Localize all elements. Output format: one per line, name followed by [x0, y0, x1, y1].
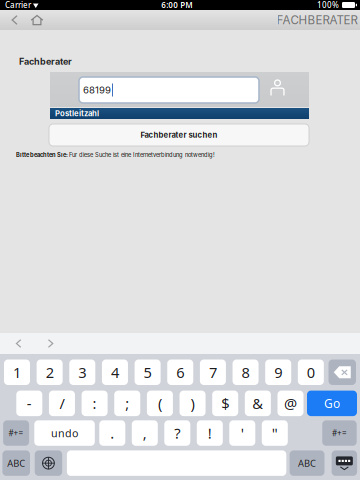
staticText: Carrier	[5, 0, 31, 10]
staticText: 6	[176, 362, 184, 382]
staticText: 5	[144, 362, 152, 382]
staticText: 4	[111, 362, 119, 382]
button[interactable]: Back	[5, 11, 25, 29]
staticText: )	[191, 394, 195, 413]
staticText: 2	[46, 362, 54, 382]
button[interactable]: /	[49, 391, 75, 416]
staticText: @	[284, 394, 297, 413]
button[interactable]: 7	[200, 359, 226, 385]
staticText: ABC	[7, 457, 25, 469]
staticText: 9	[274, 362, 282, 382]
button[interactable]: Previous	[12, 335, 26, 351]
staticText: 0	[307, 362, 315, 382]
button[interactable]	[67, 450, 286, 476]
button[interactable]: ;	[114, 391, 140, 416]
button[interactable]: ABC	[290, 450, 324, 476]
staticText: &	[252, 394, 263, 413]
staticText: ,	[143, 423, 147, 443]
button[interactable]: Go	[307, 391, 357, 416]
button[interactable]: Next	[44, 335, 58, 351]
staticText: .	[110, 423, 114, 443]
staticText: Fachberater suchen	[140, 130, 217, 140]
button[interactable]: @	[277, 391, 303, 416]
button[interactable]: 0	[298, 359, 324, 385]
button[interactable]: $	[212, 391, 238, 416]
button[interactable]: #+=	[3, 420, 29, 446]
staticText: 6:00 PM	[161, 0, 192, 10]
button[interactable]: ,	[132, 420, 158, 446]
staticText: 100%	[317, 0, 339, 10]
button[interactable]: 9	[265, 359, 291, 385]
button[interactable]: Fachberater suchen	[49, 124, 309, 146]
staticText: "	[272, 423, 278, 443]
staticText: ?	[174, 423, 180, 443]
button[interactable]: 8	[232, 359, 258, 385]
staticText: ;	[125, 394, 129, 413]
staticText: Postleitzahl	[55, 109, 99, 118]
staticText: ABC	[298, 457, 316, 469]
staticText: #+=	[332, 428, 347, 438]
button[interactable]: "	[262, 420, 288, 446]
staticText: 68199	[83, 84, 111, 96]
staticText: undo	[51, 426, 78, 440]
button[interactable]: 2	[37, 359, 63, 385]
button[interactable]: ?	[164, 420, 190, 446]
button[interactable]: 6	[167, 359, 193, 385]
button[interactable]: Delete	[328, 359, 356, 385]
staticText: 8	[241, 362, 249, 382]
button[interactable]: (	[147, 391, 173, 416]
staticText: Fachberater	[19, 56, 72, 67]
button[interactable]: Next keyboard	[35, 450, 62, 476]
button[interactable]: undo	[34, 420, 95, 446]
staticText: !	[208, 423, 212, 443]
staticText: 3	[78, 362, 86, 382]
staticText: Bitte beachten Sie: Für diese Suche ist …	[16, 151, 215, 158]
button[interactable]: 1	[4, 359, 30, 385]
button[interactable]: -	[16, 391, 42, 416]
button[interactable]: Home	[25, 11, 49, 29]
button[interactable]: 3	[69, 359, 95, 385]
button[interactable]: .	[99, 420, 125, 446]
button[interactable]: Hide keyboard	[332, 450, 357, 476]
button[interactable]: 5	[135, 359, 161, 385]
button[interactable]: )	[180, 391, 206, 416]
button[interactable]: 4	[102, 359, 128, 385]
staticText: $	[221, 394, 229, 413]
staticText: -	[27, 394, 32, 413]
staticText: :	[93, 394, 97, 413]
staticText: #+=	[9, 428, 24, 438]
button[interactable]: ABC	[2, 450, 30, 476]
staticText: FACHBERATER	[276, 13, 357, 27]
button[interactable]: &	[245, 391, 271, 416]
button[interactable]: !	[197, 420, 223, 446]
staticText: Go	[324, 395, 340, 411]
button[interactable]: :	[82, 391, 108, 416]
button[interactable]: #+=	[322, 420, 357, 446]
staticText: '	[241, 423, 244, 443]
staticText: /	[59, 394, 64, 413]
staticText: 1	[13, 362, 21, 382]
staticText: (	[158, 394, 162, 413]
staticText: 7	[209, 362, 217, 382]
button[interactable]: '	[229, 420, 255, 446]
